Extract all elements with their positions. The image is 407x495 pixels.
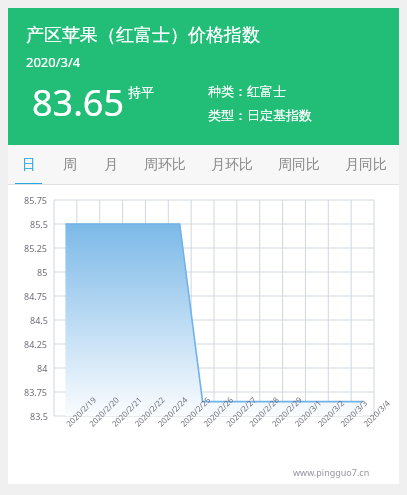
button[interactable]: 周同比 (265, 145, 332, 185)
staticText: 2020/3/4 (26, 53, 81, 71)
button[interactable]: 周环比 (131, 145, 198, 185)
staticText: 类型：日定基指数 (208, 107, 312, 123)
button[interactable]: 日 (8, 145, 49, 185)
staticText: 月 (104, 156, 118, 174)
staticText: 持平 (128, 84, 154, 100)
staticText: 83.65 (32, 78, 125, 127)
staticText: 种类：红富士 (208, 83, 286, 99)
staticText: 月同比 (345, 156, 387, 174)
staticText: 月环比 (211, 156, 253, 174)
button[interactable]: 月环比 (198, 145, 265, 185)
button[interactable]: 月 (90, 145, 131, 185)
button[interactable]: 月同比 (332, 145, 399, 185)
staticText: 日 (22, 156, 36, 174)
staticText: 产区苹果（红富士）价格指数 (26, 24, 260, 47)
staticText: 周同比 (278, 156, 320, 174)
button[interactable]: 周 (49, 145, 90, 185)
staticText: 周环比 (144, 156, 186, 174)
staticText: 周 (63, 156, 77, 174)
